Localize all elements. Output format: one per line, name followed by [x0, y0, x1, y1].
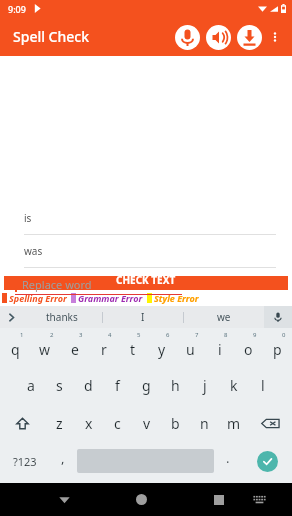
staticText: i — [218, 340, 222, 359]
staticText: 7 — [195, 331, 199, 339]
staticText: 1 — [20, 331, 24, 339]
staticText: q — [11, 340, 20, 359]
staticText: 3 — [79, 331, 83, 339]
button[interactable]: Shift — [0, 404, 45, 442]
staticText: w — [39, 340, 51, 359]
staticText: 9 — [253, 331, 257, 339]
button[interactable]: y — [147, 328, 176, 366]
button[interactable]: we — [184, 306, 264, 328]
staticText: ?123 — [13, 454, 37, 469]
button[interactable]: I — [103, 306, 183, 328]
button[interactable]: is — [24, 202, 276, 234]
button[interactable]: Speak — [175, 25, 200, 50]
button[interactable]: w — [30, 328, 60, 366]
button[interactable]: m — [219, 404, 248, 442]
button[interactable]: Switch keyboard — [239, 483, 280, 516]
staticText: I — [141, 310, 145, 324]
button[interactable]: Home — [121, 483, 162, 516]
button[interactable]: Recent apps — [198, 483, 239, 516]
staticText: g — [142, 376, 151, 395]
staticText: n — [200, 414, 209, 433]
button[interactable]: z — [45, 404, 74, 442]
staticText: 4 — [108, 331, 112, 339]
staticText: j — [203, 376, 207, 395]
staticText: k — [230, 376, 238, 395]
button[interactable]: b — [161, 404, 190, 442]
staticText: v — [143, 414, 151, 433]
staticText: 2 — [50, 331, 54, 339]
staticText: f — [115, 376, 120, 395]
staticText: l — [261, 376, 265, 395]
button[interactable]: CHECK TEXT — [4, 269, 288, 290]
button[interactable]: o — [234, 328, 263, 366]
staticText: p — [273, 340, 282, 359]
button[interactable]: More options — [262, 24, 288, 50]
staticText: Grammar Error — [78, 292, 143, 304]
button[interactable]: x — [74, 404, 103, 442]
staticText: r — [101, 340, 107, 359]
button[interactable]: ?123 — [0, 442, 49, 480]
button[interactable]: l — [248, 366, 277, 404]
button[interactable]: n — [190, 404, 219, 442]
staticText: 5 — [137, 331, 141, 339]
button[interactable]: Backspace — [248, 404, 292, 442]
staticText: o — [244, 340, 253, 359]
staticText: b — [171, 414, 180, 433]
button[interactable]: . — [214, 442, 242, 480]
button[interactable]: k — [219, 366, 248, 404]
staticText: Spelling Error — [9, 292, 67, 304]
staticText: u — [186, 340, 195, 359]
staticText: d — [84, 376, 93, 395]
staticText: 6 — [166, 331, 170, 339]
button[interactable]: r — [89, 328, 118, 366]
staticText: t — [130, 340, 136, 359]
staticText: z — [56, 414, 63, 433]
staticText: s — [56, 376, 63, 395]
button[interactable]: g — [132, 366, 161, 404]
staticText: e — [71, 340, 79, 359]
button[interactable]: Enter — [242, 442, 292, 480]
staticText: c — [114, 414, 121, 433]
button[interactable]: , — [49, 442, 77, 480]
staticText: a — [27, 376, 35, 395]
button[interactable]: f — [103, 366, 132, 404]
button[interactable]: Voice input — [264, 306, 292, 328]
staticText: y — [158, 340, 166, 359]
button[interactable]: t — [118, 328, 147, 366]
staticText: h — [171, 376, 180, 395]
staticText: Spell Check — [13, 27, 90, 46]
staticText: thanks — [46, 310, 78, 324]
staticText: is — [24, 211, 32, 225]
staticText: m — [227, 414, 241, 433]
button[interactable]: thanks — [22, 306, 102, 328]
staticText: 9:09 — [8, 3, 26, 15]
button[interactable]: Replace word — [22, 277, 92, 292]
button[interactable]: h — [161, 366, 190, 404]
button[interactable]: i — [205, 328, 234, 366]
button[interactable]: Listen — [206, 25, 231, 50]
button[interactable]: q — [0, 328, 30, 366]
button[interactable]: p — [263, 328, 292, 366]
button[interactable]: Download — [237, 25, 262, 50]
staticText: . — [226, 449, 230, 467]
staticText: 8 — [224, 331, 228, 339]
button[interactable]: Expand suggestions — [0, 306, 22, 328]
button[interactable]: s — [45, 366, 74, 404]
button[interactable]: was — [24, 235, 276, 267]
button[interactable]: a — [16, 366, 45, 404]
staticText: Style Error — [154, 292, 199, 304]
staticText: we — [217, 310, 231, 324]
button[interactable]: e — [60, 328, 89, 366]
button[interactable]: d — [74, 366, 103, 404]
button[interactable]: j — [190, 366, 219, 404]
staticText: 0 — [282, 331, 286, 339]
button[interactable]: c — [103, 404, 132, 442]
button[interactable]: v — [132, 404, 161, 442]
staticText: was — [24, 244, 43, 258]
staticText: , — [61, 449, 65, 467]
button[interactable]: Back — [44, 483, 85, 516]
button[interactable]: u — [176, 328, 205, 366]
staticText: CHECK TEXT — [116, 273, 176, 287]
